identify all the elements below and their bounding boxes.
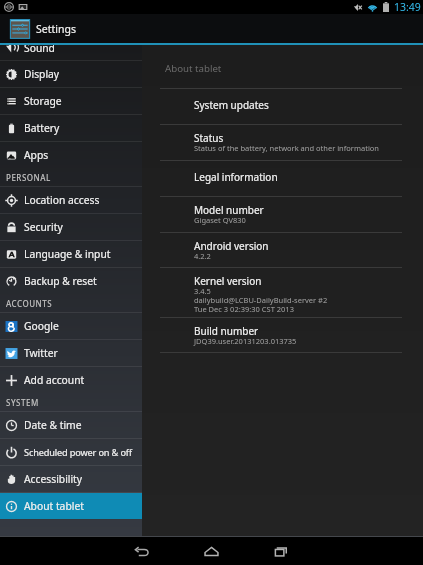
staticText: About tablet	[165, 62, 222, 75]
button[interactable]: Status	[142, 125, 423, 160]
button[interactable]: Battery	[0, 115, 142, 141]
staticText: Twitter	[24, 346, 58, 360]
button[interactable]: Date & time	[0, 412, 142, 438]
staticText: About tablet	[24, 499, 84, 513]
staticText: PERSONAL	[6, 172, 51, 183]
staticText: Sound	[24, 45, 55, 55]
button[interactable]: Recent apps	[256, 537, 306, 565]
button[interactable]: Language & input	[0, 241, 142, 267]
button[interactable]: Apps	[0, 142, 142, 168]
button[interactable]: Back	[116, 537, 166, 565]
staticText: 13:49	[394, 0, 421, 14]
button[interactable]: Location access	[0, 187, 142, 213]
staticText: Scheduled power on & off	[24, 446, 133, 459]
button[interactable]: Twitter	[0, 340, 142, 366]
button[interactable]: Security	[0, 214, 142, 240]
staticText: Gigaset QV830	[194, 215, 246, 225]
button[interactable]: Scheduled power on & off	[0, 439, 142, 465]
staticText: Backup & reset	[24, 274, 97, 288]
button[interactable]: Backup & reset	[0, 268, 142, 294]
button[interactable]: Storage	[0, 88, 142, 114]
staticText: Battery	[24, 121, 60, 135]
button[interactable]: Kernel version	[142, 268, 423, 317]
staticText: Build number	[194, 324, 259, 338]
button[interactable]: Google	[0, 313, 142, 339]
staticText: Add account	[24, 373, 85, 387]
staticText: 4.2.2	[194, 251, 211, 261]
staticText: Date & time	[24, 418, 82, 432]
staticText: Google	[24, 319, 59, 333]
staticText: Settings	[36, 22, 76, 36]
button[interactable]: System updates	[142, 89, 423, 124]
staticText: Apps	[24, 148, 49, 162]
staticText: Android version	[194, 239, 269, 253]
staticText: System updates	[194, 98, 269, 112]
staticText: Status	[194, 131, 224, 145]
staticText: Accessibility	[24, 472, 83, 486]
button[interactable]: Sound	[0, 45, 142, 60]
button[interactable]: Legal information	[142, 161, 423, 196]
button[interactable]: About tablet	[0, 493, 142, 519]
button[interactable]: Build number	[142, 318, 423, 352]
staticText: Language & input	[24, 247, 111, 261]
button[interactable]: Add account	[0, 367, 142, 393]
staticText: Kernel version	[194, 274, 262, 288]
staticText: Legal information	[194, 170, 278, 184]
button[interactable]: Settings	[0, 14, 423, 43]
staticText: Storage	[24, 94, 62, 108]
staticText: Status of the battery, network and other…	[194, 143, 379, 153]
button[interactable]: Model number	[142, 197, 423, 232]
staticText: Location access	[24, 193, 100, 207]
staticText: SYSTEM	[6, 397, 39, 408]
button[interactable]: Accessibility	[0, 466, 142, 492]
button[interactable]: Home	[186, 537, 236, 565]
staticText: 3.4.5 dailybuild@LCBU-DailyBuild-server …	[194, 286, 328, 315]
staticText: Model number	[194, 203, 264, 217]
staticText: JDQ39.user.20131203.013735	[194, 336, 297, 346]
staticText: Display	[24, 67, 60, 81]
button[interactable]: Display	[0, 61, 142, 87]
staticText: Security	[24, 220, 63, 234]
staticText: ACCOUNTS	[6, 298, 53, 309]
button[interactable]: Android version	[142, 233, 423, 267]
